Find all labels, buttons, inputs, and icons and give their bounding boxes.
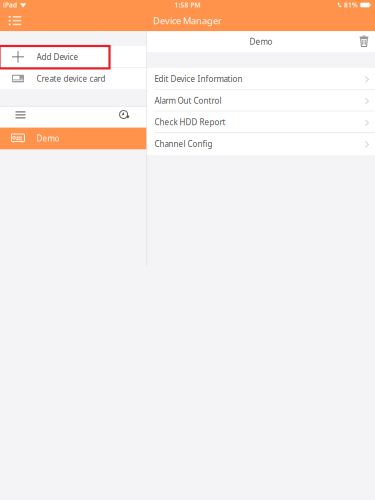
staticText: Channel Config: [155, 139, 213, 149]
staticText: Check HDD Report: [155, 117, 226, 127]
button[interactable]: Edit Device Information: [147, 68, 375, 90]
button[interactable]: Channel Config: [147, 133, 375, 155]
staticText: iPad: [3, 1, 17, 9]
staticText: Add Device: [36, 51, 78, 62]
button[interactable]: Reorder devices: [10, 106, 30, 124]
staticText: Demo: [36, 133, 59, 144]
button[interactable]: Create device card: [0, 68, 146, 89]
staticText: Device Manager: [153, 14, 222, 27]
staticText: 1:58 PM: [174, 1, 200, 9]
button[interactable]: Device list: [4, 12, 26, 30]
button[interactable]: Alarm Out Control: [147, 90, 375, 111]
staticText: Demo: [249, 36, 272, 47]
button[interactable]: Demo: [0, 128, 146, 149]
staticText: Alarm Out Control: [155, 95, 222, 106]
button[interactable]: Add Device: [0, 46, 146, 68]
staticText: Edit Device Information: [155, 73, 243, 84]
button[interactable]: Check HDD Report: [147, 111, 375, 133]
staticText: 81%: [344, 1, 358, 9]
button[interactable]: Recent devices: [115, 106, 133, 124]
staticText: Create device card: [36, 73, 105, 84]
button[interactable]: Delete device: [356, 34, 372, 50]
